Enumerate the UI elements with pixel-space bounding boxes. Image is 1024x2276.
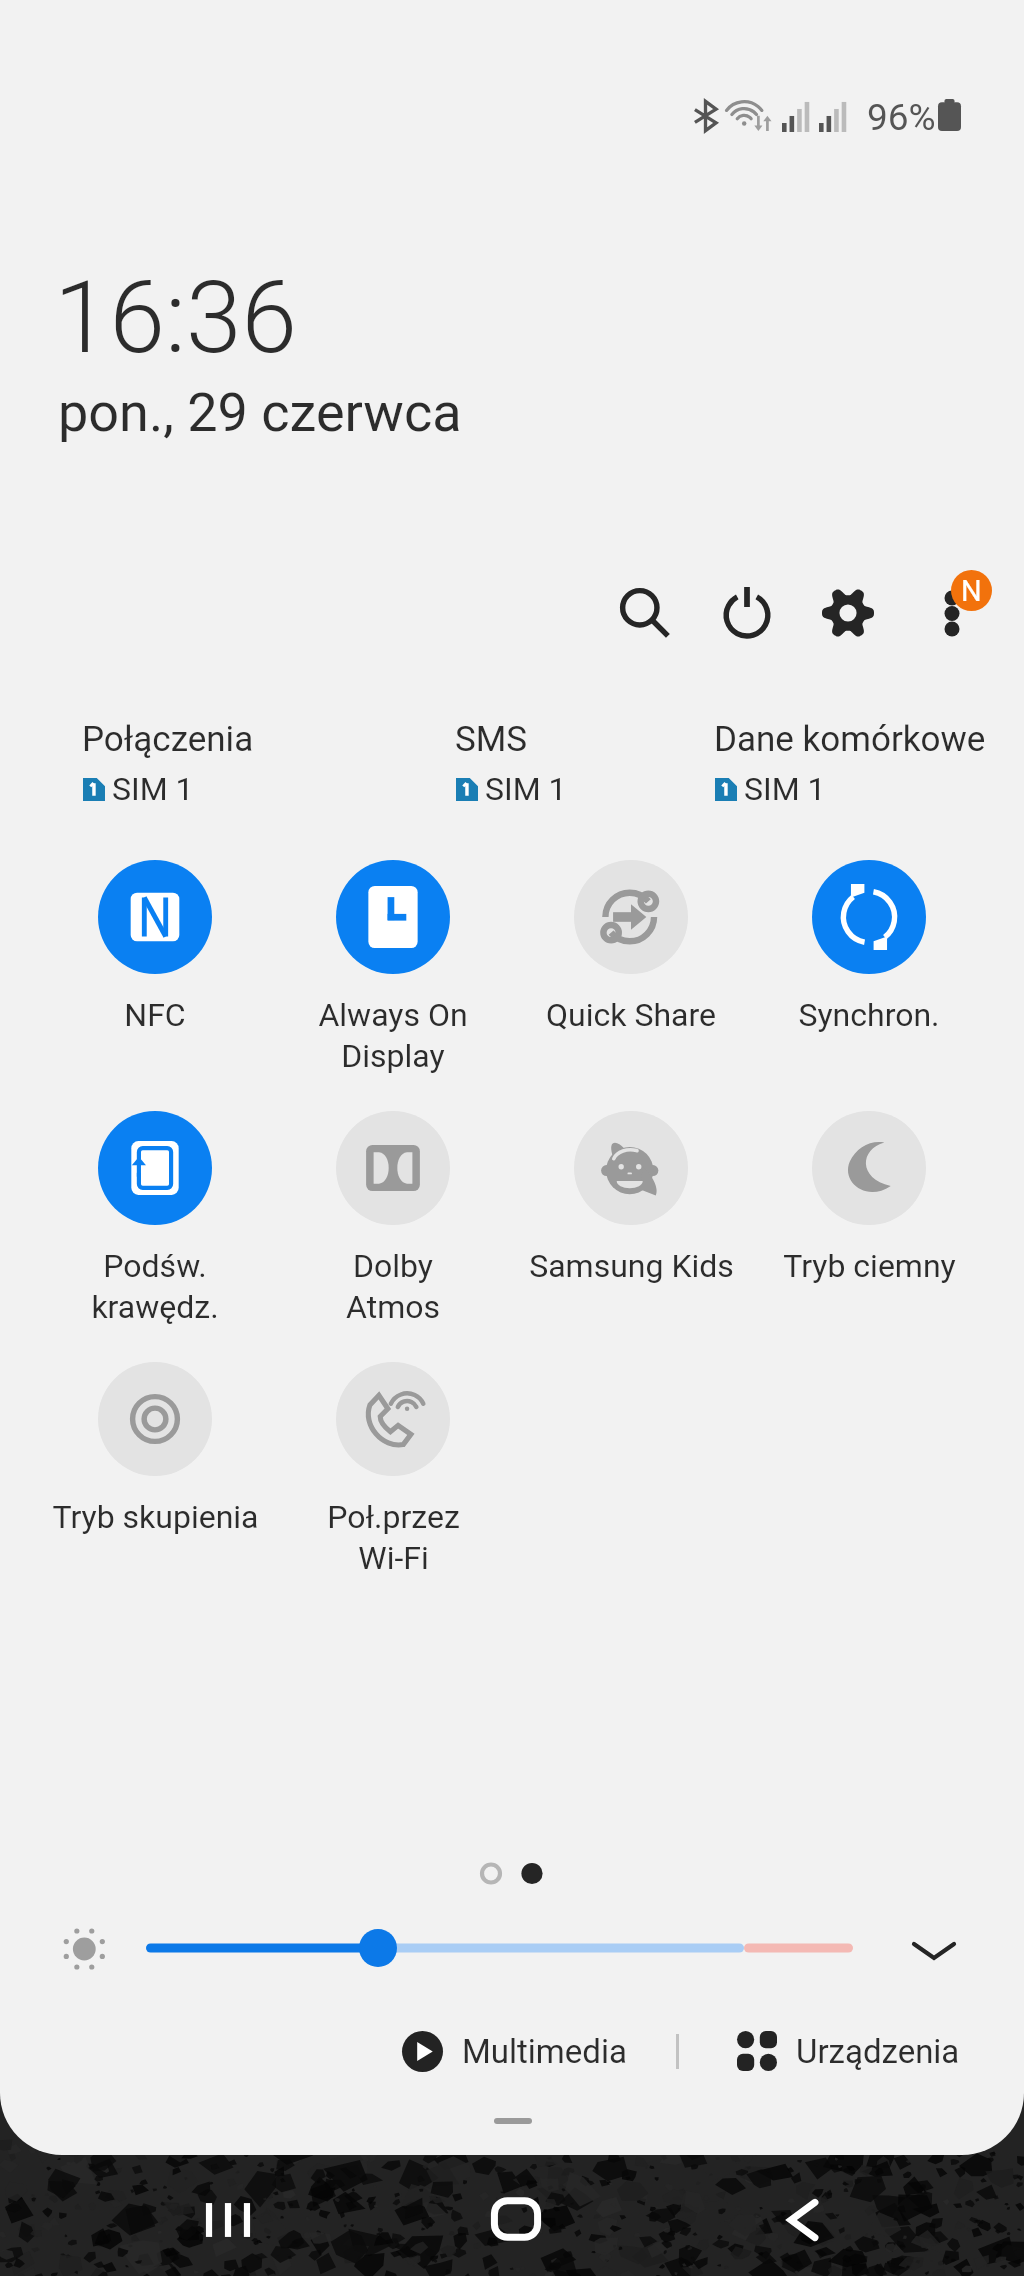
button[interactable]: Power off bbox=[699, 562, 795, 658]
staticText: Always On Display bbox=[318, 996, 468, 1075]
staticText: Quick Share bbox=[546, 996, 716, 1034]
staticText: SMS bbox=[455, 719, 528, 760]
staticText: N bbox=[961, 574, 982, 608]
button[interactable]: Tryb skupienia bbox=[36, 1362, 274, 1536]
button[interactable]: NFC bbox=[36, 860, 274, 1034]
staticText: Urządzenia bbox=[796, 2032, 960, 2071]
button[interactable]: Always On Display bbox=[274, 860, 512, 1075]
button[interactable]: Quick Share bbox=[512, 860, 750, 1034]
button[interactable]: Samsung Kids bbox=[512, 1111, 750, 1285]
button[interactable]: Dolby Atmos bbox=[274, 1111, 512, 1326]
staticText: pon., 29 czerwca bbox=[58, 381, 462, 444]
button[interactable]: More options bbox=[902, 565, 998, 661]
staticText: Podśw. krawędz. bbox=[91, 1247, 219, 1326]
button[interactable]: Tryb ciemny bbox=[750, 1111, 988, 1285]
staticText: Poł.przez Wi-Fi bbox=[327, 1498, 460, 1577]
button[interactable]: Urządzenia bbox=[727, 2021, 972, 2081]
button[interactable]: Settings bbox=[800, 565, 896, 661]
staticText: Tryb skupienia bbox=[52, 1498, 259, 1536]
staticText: SIM 1 bbox=[112, 770, 194, 808]
button[interactable]: Expand quick settings bbox=[898, 1914, 970, 1986]
staticText: Dolby Atmos bbox=[346, 1247, 440, 1326]
staticText: Multimedia bbox=[462, 2032, 627, 2071]
staticText: Połączenia bbox=[82, 719, 254, 760]
staticText: Samsung Kids bbox=[529, 1247, 734, 1285]
staticText: SIM 1 bbox=[485, 770, 567, 808]
staticText: 16:36 bbox=[54, 259, 297, 376]
button[interactable]: Synchron. bbox=[750, 860, 988, 1034]
button[interactable]: Podśw. krawędz. bbox=[36, 1111, 274, 1326]
button[interactable]: Search bbox=[597, 565, 693, 661]
staticText: NFC bbox=[124, 996, 186, 1034]
button[interactable]: Poł.przez Wi-Fi bbox=[274, 1362, 512, 1577]
staticText: Dane komórkowe bbox=[714, 719, 986, 760]
staticText: 96% bbox=[867, 96, 936, 139]
staticText: Tryb ciemny bbox=[783, 1247, 956, 1285]
staticText: SIM 1 bbox=[744, 770, 826, 808]
button[interactable]: Back bbox=[743, 2160, 863, 2276]
staticText: Synchron. bbox=[798, 996, 940, 1034]
button[interactable]: Home bbox=[456, 2159, 576, 2276]
button[interactable]: Multimedia bbox=[392, 2021, 639, 2081]
button[interactable]: Recent apps bbox=[168, 2160, 288, 2276]
